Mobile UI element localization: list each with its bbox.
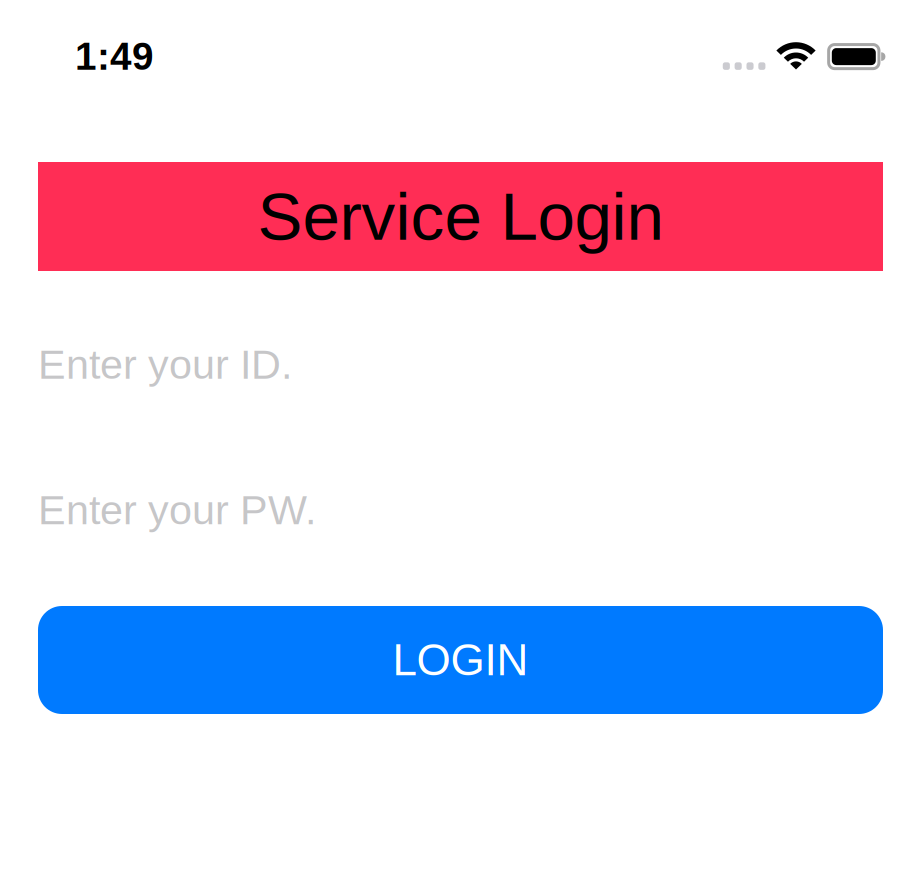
- button[interactable]: Enter your ID.: [38, 335, 883, 393]
- button[interactable]: Enter your PW.: [38, 481, 883, 539]
- staticText: Service Login: [257, 179, 663, 254]
- staticText: Enter your PW.: [38, 487, 316, 533]
- staticText: LOGIN: [392, 635, 528, 685]
- staticText: 1:49: [75, 35, 154, 78]
- staticText: Enter your ID.: [38, 341, 292, 388]
- button[interactable]: LOGIN: [38, 606, 883, 714]
